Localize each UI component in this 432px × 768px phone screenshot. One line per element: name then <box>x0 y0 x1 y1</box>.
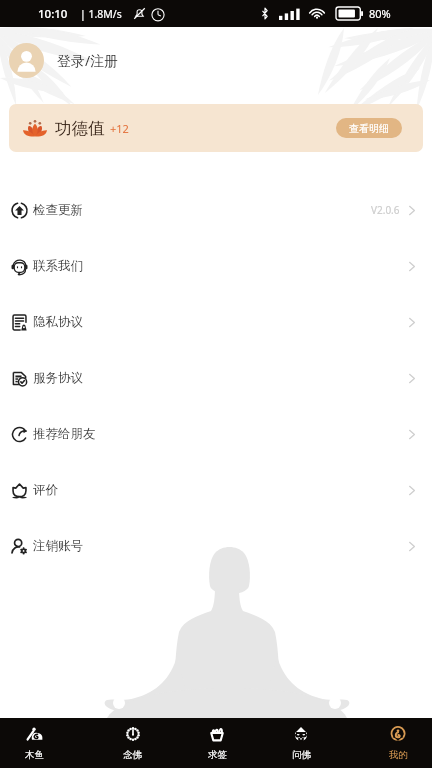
staticText: 念佛 <box>123 749 142 761</box>
button[interactable]: 隐私协议 <box>0 294 432 350</box>
staticText: 检查更新 <box>33 202 83 218</box>
staticText: 服务协议 <box>33 370 83 386</box>
staticText: 功德值 <box>55 118 105 139</box>
staticText: 推荐给朋友 <box>33 426 96 442</box>
button[interactable]: 检查更新 <box>0 182 432 238</box>
button[interactable]: 我的 <box>355 718 432 768</box>
button[interactable]: 功德值 <box>9 104 423 152</box>
staticText: 查看明细 <box>349 122 389 135</box>
staticText: V2.0.6 <box>371 203 400 217</box>
button[interactable]: 查看明细 <box>336 118 402 138</box>
staticText: 联系我们 <box>33 258 83 274</box>
staticText: 注销账号 <box>33 538 83 554</box>
button[interactable]: 登录/注册 <box>0 27 432 104</box>
button[interactable]: 评价 <box>0 462 432 518</box>
button[interactable]: 注销账号 <box>0 518 432 574</box>
staticText: 木鱼 <box>25 749 44 761</box>
button[interactable]: 联系我们 <box>0 238 432 294</box>
button[interactable]: 木鱼 <box>0 718 78 768</box>
staticText: 隐私协议 <box>33 314 83 330</box>
button[interactable]: 求签 <box>174 718 260 768</box>
button[interactable]: 服务协议 <box>0 350 432 406</box>
button[interactable]: 推荐给朋友 <box>0 406 432 462</box>
button[interactable]: 念佛 <box>89 718 176 768</box>
staticText: +12 <box>110 121 129 136</box>
staticText: 我的 <box>389 749 408 761</box>
staticText: 登录/注册 <box>57 51 119 70</box>
staticText: 问佛 <box>292 749 311 761</box>
staticText: 80% <box>369 6 391 21</box>
staticText: | 1.8M/s <box>80 7 122 21</box>
staticText: 10:10 <box>38 6 68 22</box>
staticText: 评价 <box>33 482 58 498</box>
button[interactable]: 问佛 <box>258 718 344 768</box>
staticText: 求签 <box>208 749 227 761</box>
